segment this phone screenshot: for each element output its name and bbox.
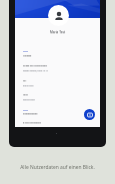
staticText: E-Mail Geschäftlich bbox=[23, 121, 42, 124]
staticText: Straße und Hausnummer bbox=[23, 64, 48, 67]
button[interactable] bbox=[23, 120, 89, 125]
staticText: Ort bbox=[23, 80, 27, 83]
staticText: Kontaktdaten bbox=[23, 112, 38, 115]
staticText: Land bbox=[23, 93, 28, 96]
button[interactable]: Kontaktdaten bbox=[23, 112, 38, 115]
staticText: Land bbox=[23, 94, 28, 97]
button[interactable]: Adresse bbox=[23, 54, 32, 57]
staticText: Maria Test bbox=[15, 31, 100, 35]
staticText: Design Offices, Ethik 13-17 bbox=[23, 70, 48, 73]
staticText: Kontaktdaten bbox=[23, 113, 38, 116]
staticText: 50670 Köln bbox=[23, 85, 34, 88]
staticText: Alle Nutzerdaten auf einen Blick. bbox=[0, 164, 115, 171]
staticText: E-Mail Geschäftlich bbox=[23, 122, 42, 125]
staticText: Adresse bbox=[23, 55, 32, 58]
staticText: Adresse bbox=[23, 54, 32, 57]
staticText: Deutschland bbox=[23, 99, 35, 102]
staticText: Maria Test bbox=[15, 30, 100, 34]
staticText: Deutschland bbox=[23, 98, 35, 101]
button[interactable]: Kontaktdaten bearbeiten bbox=[84, 109, 95, 120]
button[interactable] bbox=[23, 78, 89, 88]
button[interactable] bbox=[23, 92, 89, 102]
staticText: Straße und Hausnummer bbox=[23, 65, 48, 68]
staticText: Design Offices, Ethik 13-17 bbox=[23, 69, 48, 72]
staticText: 50670 Köln bbox=[23, 84, 34, 87]
button[interactable] bbox=[23, 63, 89, 73]
button[interactable]: Profilbild bbox=[48, 5, 69, 26]
staticText: Ort bbox=[23, 79, 27, 82]
